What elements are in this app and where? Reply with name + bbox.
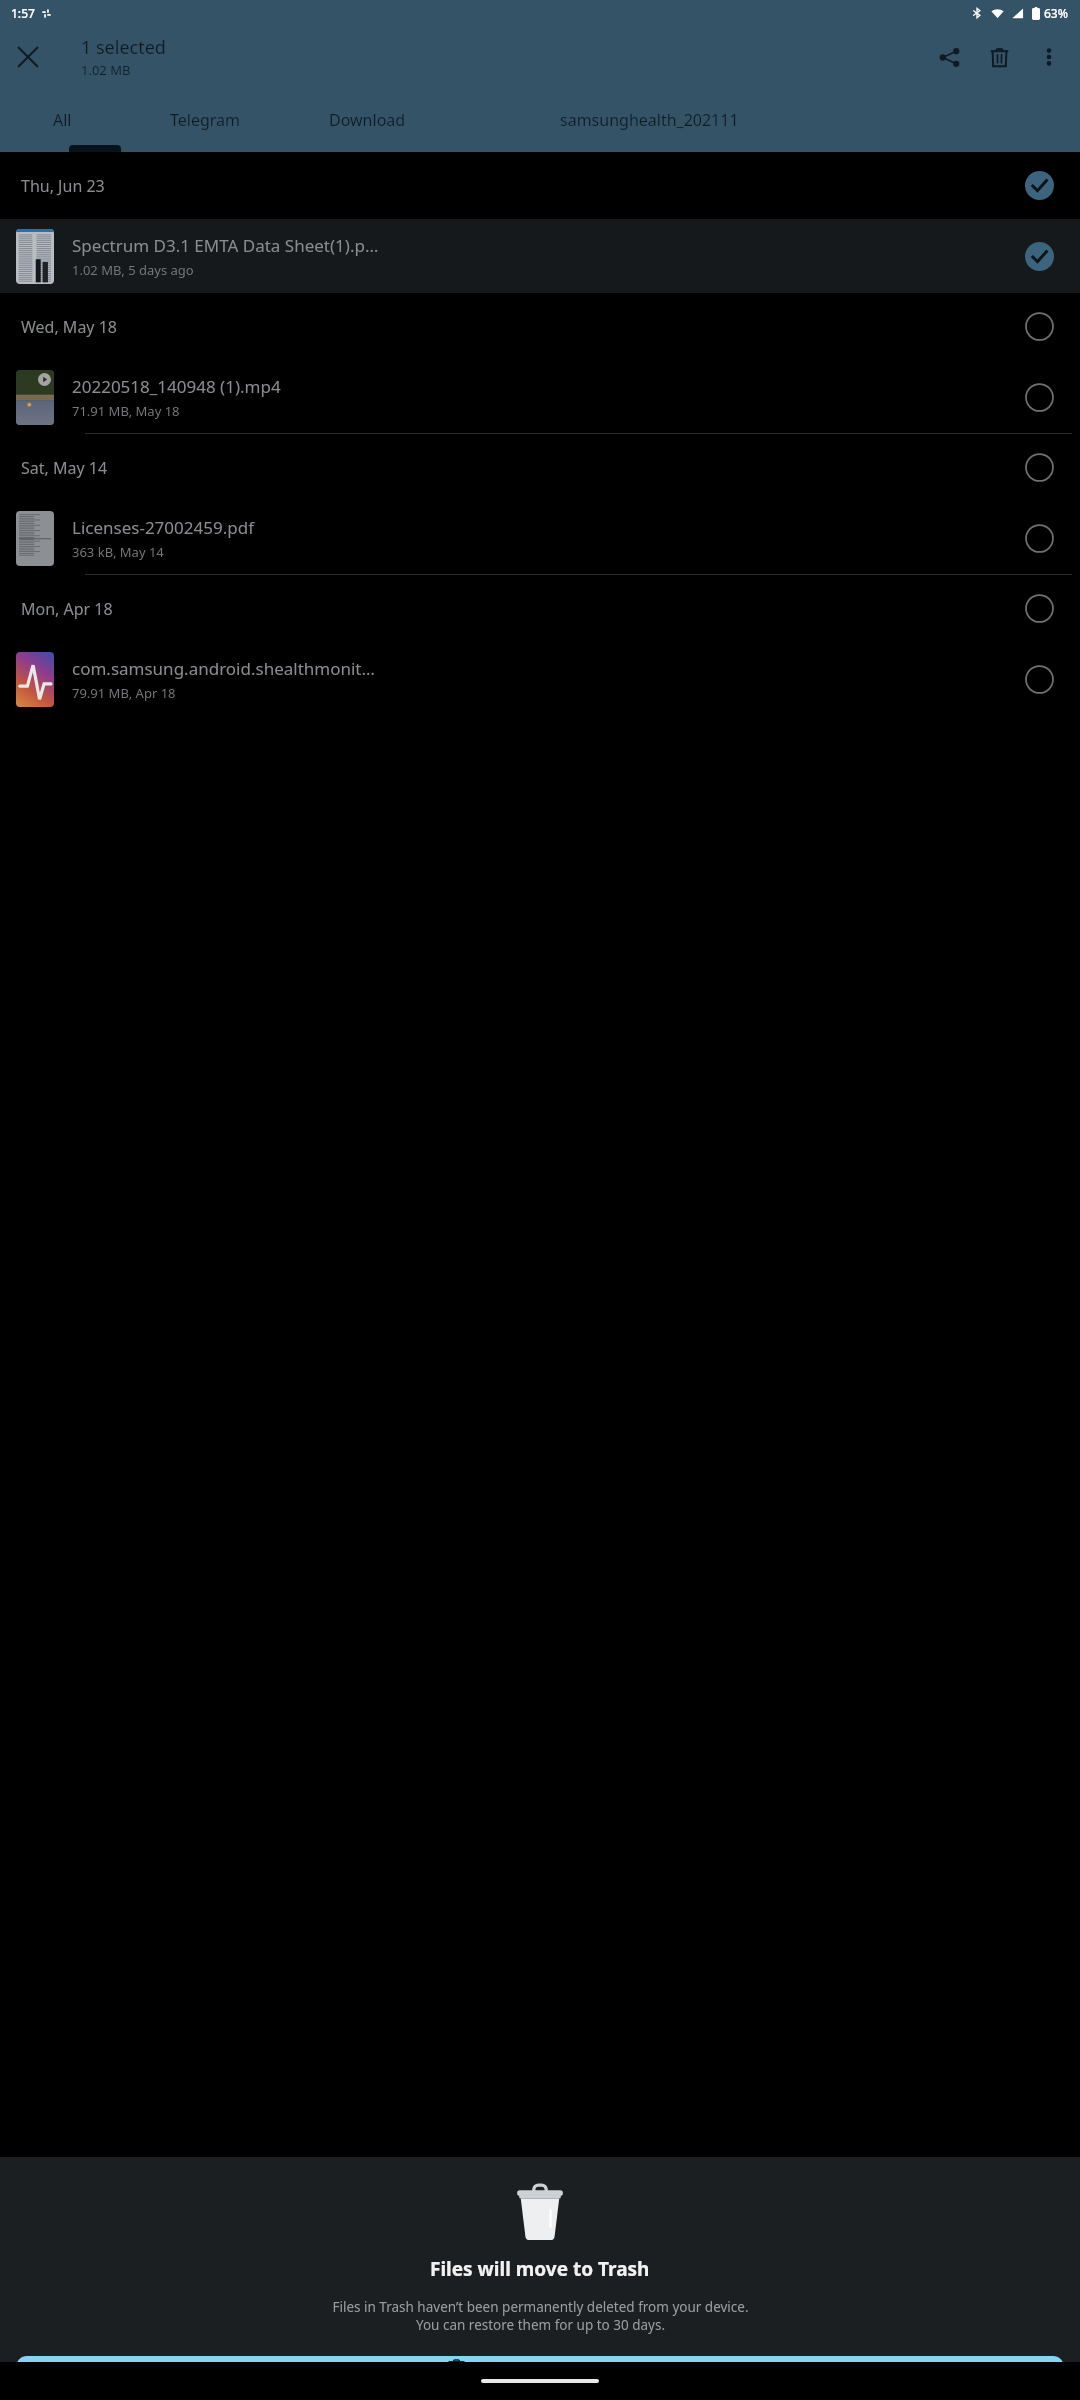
staticText: 363 kB, May 14 [72,543,164,561]
button[interactable]: Move 1 file to Trash [16,2356,1064,2378]
staticText: 1.02 MB [81,61,131,79]
staticText: com.samsung.android.shealthmonit… [72,657,375,680]
button[interactable]: samsunghealth_202111 [449,88,849,152]
button[interactable]: Mon, Apr 18 [0,575,1080,642]
staticText: Telegram [170,109,241,131]
button[interactable]: com.samsung.android.shealthmonit… [0,642,1080,716]
button[interactable]: Share [924,32,974,82]
button[interactable]: More options [1024,32,1074,82]
staticText: samsunghealth_202111 [560,109,739,131]
staticText: 1.02 MB, 5 days ago [72,261,194,279]
staticText: All [53,109,72,131]
staticText: Files in Trash haven’t been permanently … [332,2298,749,2334]
button[interactable]: Licenses-27002459.pdf [0,501,1080,575]
staticText: 79.91 MB, Apr 18 [72,684,176,702]
button[interactable]: Delete [974,32,1024,82]
button[interactable]: 20220518_140948 (1).mp4 [0,360,1080,434]
staticText: 71.91 MB, May 18 [72,402,180,420]
staticText: Sat, May 14 [21,457,108,479]
button[interactable]: Wed, May 18 [0,293,1080,360]
staticText: Mon, Apr 18 [21,598,113,620]
button[interactable]: Spectrum D3.1 EMTA Data Sheet(1).p… [0,219,1080,293]
staticText: Thu, Jun 23 [21,175,105,197]
staticText: 1 selected [81,35,166,60]
staticText: Licenses-27002459.pdf [72,516,255,539]
staticText: Move 1 file to Trash [477,2356,633,2378]
button[interactable]: Telegram [124,88,286,152]
staticText: Spectrum D3.1 EMTA Data Sheet(1).p… [72,234,379,257]
button[interactable]: Close selection [0,29,56,85]
button[interactable]: Thu, Jun 23 [0,152,1080,219]
button[interactable]: All [0,88,124,152]
staticText: 20220518_140948 (1).mp4 [72,375,281,398]
button[interactable]: Sat, May 14 [0,434,1080,501]
staticText: 63% [1044,5,1068,21]
staticText: Files will move to Trash [430,2256,650,2282]
staticText: Wed, May 18 [21,316,117,338]
staticText: Download [329,109,406,131]
staticText: 1:57 [11,5,35,21]
button[interactable]: Download [286,88,449,152]
